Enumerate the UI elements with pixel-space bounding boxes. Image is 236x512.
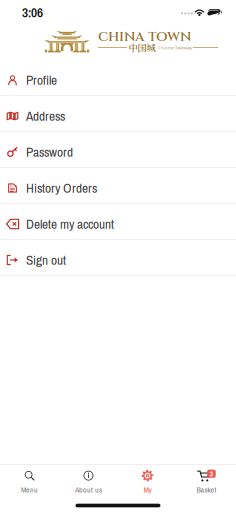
button[interactable]: About us <box>59 463 118 501</box>
button[interactable]: Password <box>0 132 236 168</box>
staticText: Basket <box>196 484 216 495</box>
staticText: Delete my account <box>26 215 114 233</box>
staticText: About us <box>75 484 102 495</box>
button[interactable]: Menu <box>0 463 59 501</box>
staticText: Chinese Takeaway <box>158 45 192 50</box>
staticText: CHINA TOWN <box>98 28 191 46</box>
staticText: 3:06 <box>22 3 43 21</box>
button[interactable]: Profile <box>0 60 236 96</box>
staticText: My <box>143 484 151 495</box>
staticText: Password <box>26 143 73 161</box>
button[interactable]: Sign out <box>0 240 236 276</box>
button[interactable]: History Orders <box>0 168 236 204</box>
button[interactable]: 3 <box>177 463 236 501</box>
staticText: Menu <box>21 484 38 495</box>
staticText: Profile <box>26 71 57 89</box>
staticText: Address <box>26 107 65 125</box>
staticText: Sign out <box>26 251 66 269</box>
button[interactable]: My <box>118 463 177 501</box>
staticText: History Orders <box>26 179 97 197</box>
button[interactable]: Delete my account <box>0 204 236 240</box>
staticText: 3 <box>209 468 213 479</box>
button[interactable]: Address <box>0 96 236 132</box>
staticText: 中国城 <box>128 41 155 54</box>
